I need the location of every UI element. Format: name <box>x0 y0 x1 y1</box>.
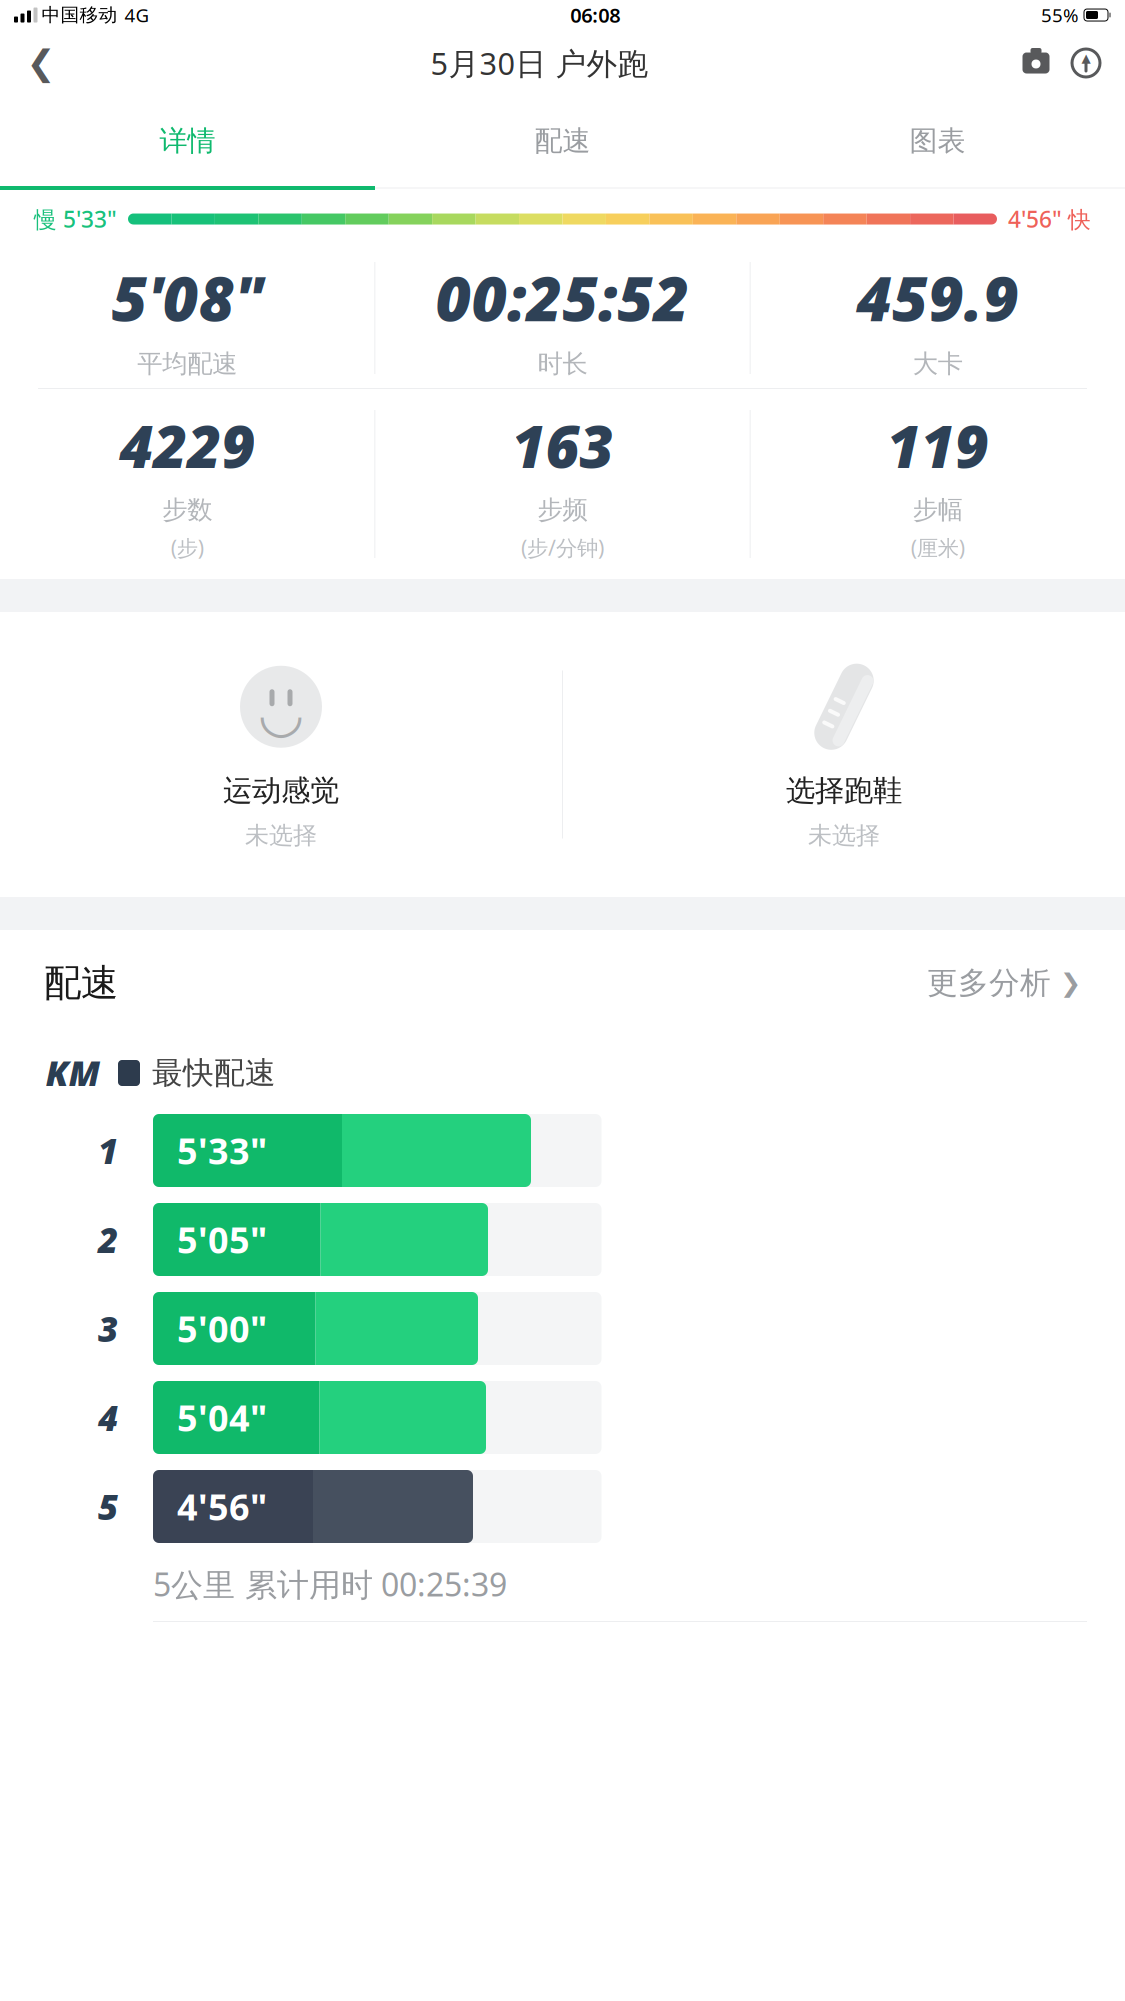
staticText: 平均配速 <box>137 348 237 379</box>
staticText: ▲ <box>1081 51 1090 65</box>
button[interactable]: Back <box>14 36 68 90</box>
staticText: 3 <box>98 1305 118 1351</box>
staticText: 2 <box>98 1216 118 1262</box>
button[interactable]: 配速 <box>0 930 1125 1036</box>
staticText: 配速 <box>534 124 590 158</box>
staticText: (步) <box>171 533 204 562</box>
staticText: 5'00" <box>177 1305 267 1352</box>
staticText: 4 <box>98 1394 118 1440</box>
staticText: 慢 5'33" <box>34 204 117 234</box>
staticText: 5'04" <box>177 1394 267 1441</box>
button[interactable]: 选择跑鞋 <box>563 633 1125 876</box>
button[interactable]: ◡ <box>0 633 562 876</box>
staticText: 选择跑鞋 <box>786 773 902 809</box>
staticText: 1 <box>98 1127 118 1173</box>
staticText: 运动感觉 <box>223 773 339 809</box>
staticText: 06:08 <box>570 2 620 28</box>
staticText: 4G <box>124 3 149 27</box>
staticText: ❯ <box>1060 969 1081 997</box>
staticText: ❮ <box>26 43 55 83</box>
staticText: KM <box>45 1050 100 1096</box>
staticText: 最快配速 <box>152 1054 276 1092</box>
button[interactable]: Upload <box>1061 38 1111 88</box>
staticText: 5公里 累计用时 00:25:39 <box>153 1563 507 1605</box>
button[interactable]: 配速 <box>375 96 750 186</box>
staticText: 5'08" <box>112 257 263 338</box>
staticText: 详情 <box>159 124 215 158</box>
staticText: 5 <box>98 1483 118 1529</box>
staticText: (步/分钟) <box>521 533 604 562</box>
button[interactable]: 图表 <box>750 96 1125 186</box>
button[interactable]: Camera <box>1011 38 1061 88</box>
staticText: 中国移动 <box>41 3 117 26</box>
staticText: 步数 <box>162 494 212 525</box>
staticText: 未选择 <box>245 821 317 850</box>
button[interactable]: 详情 <box>0 96 375 186</box>
staticText: 119 <box>887 406 989 484</box>
staticText: 5'05" <box>177 1216 267 1263</box>
staticText: 配速 <box>44 960 118 1006</box>
staticText: 4'56" <box>177 1483 267 1530</box>
staticText: 大卡 <box>913 348 963 379</box>
staticText: 163 <box>511 406 613 484</box>
staticText: 5月30日 户外跑 <box>430 43 648 83</box>
staticText: ◡ <box>260 682 301 743</box>
staticText: 4229 <box>119 406 255 484</box>
staticText: 时长 <box>537 348 587 379</box>
staticText: 00:25:52 <box>435 257 689 338</box>
staticText: (厘米) <box>911 533 965 562</box>
staticText: 55% <box>1041 3 1079 27</box>
staticText: 4'56" 快 <box>1008 204 1091 234</box>
staticText: 未选择 <box>808 821 880 850</box>
staticText: 图表 <box>909 124 965 158</box>
staticText: 更多分析 <box>927 964 1051 1002</box>
staticText: 步幅 <box>913 494 963 525</box>
staticText: 459.9 <box>856 257 1019 338</box>
staticText: 步频 <box>537 494 587 525</box>
staticText: 5'33" <box>177 1127 267 1174</box>
